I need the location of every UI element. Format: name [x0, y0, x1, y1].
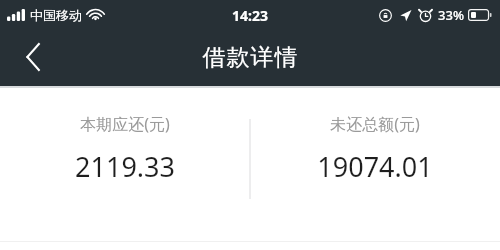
staticText: 14:23 — [232, 6, 268, 25]
button[interactable]: 返回 — [12, 36, 54, 78]
staticText: 19074.01 — [317, 148, 433, 185]
staticText: 未还总额(元) — [330, 113, 420, 135]
staticText: 2119.33 — [75, 148, 175, 185]
staticText: 借款详情 — [202, 43, 298, 72]
staticText: 33% — [438, 6, 464, 24]
staticText: 中国移动 — [30, 7, 82, 23]
staticText: 本期应还(元) — [80, 113, 170, 135]
